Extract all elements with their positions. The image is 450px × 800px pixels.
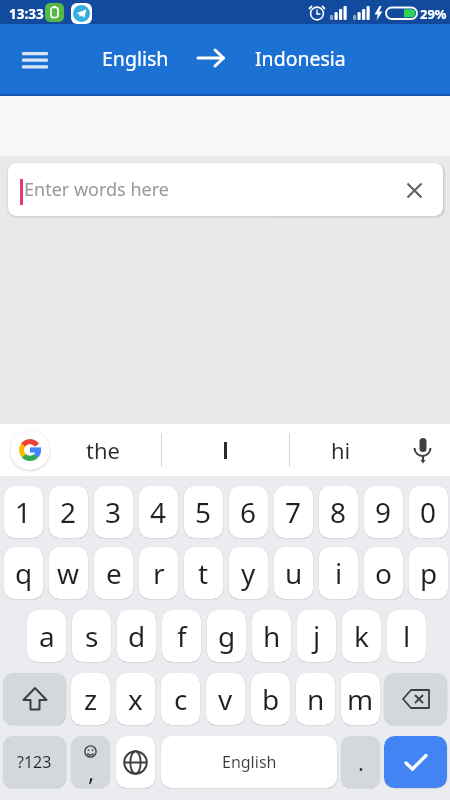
button[interactable]: 6 [229,486,268,538]
button[interactable] [14,42,56,78]
staticText: English [102,45,169,72]
button[interactable]: q [4,547,43,599]
button[interactable]: Indonesia [246,32,354,84]
button[interactable]: e [94,547,133,599]
staticText: 1 [15,493,32,531]
staticText: w [57,554,80,592]
button[interactable]: n [296,673,335,725]
staticText: m [347,680,374,718]
staticText: ?123 [17,751,52,773]
button[interactable]: English [88,32,183,84]
staticText: f [177,617,187,655]
staticText: l [403,617,411,655]
staticText: d [128,617,146,655]
staticText: t [198,554,209,592]
staticText: p [420,554,438,592]
button[interactable]: 8 [319,486,358,538]
button[interactable]: o [364,547,403,599]
button[interactable]: 0 [409,486,448,538]
button[interactable]: h [252,610,291,662]
button[interactable] [182,424,268,476]
staticText: 4 [150,493,167,531]
button[interactable]: w [49,547,88,599]
staticText: the [86,435,120,465]
staticText: j [313,617,321,655]
button[interactable]: v [206,673,245,725]
button[interactable]: 1 [4,486,43,538]
button[interactable]: t [184,547,223,599]
button[interactable]: j [297,610,336,662]
staticText: h [263,617,281,655]
button[interactable]: z [71,673,110,725]
staticText: 5 [195,493,212,531]
button[interactable] [384,673,447,725]
button[interactable]: the [60,424,146,476]
staticText: c [174,680,188,718]
button[interactable] [194,44,228,72]
staticText: 2 [60,493,77,531]
button[interactable]: m [341,673,380,725]
button[interactable]: y [229,547,268,599]
button[interactable]: 9 [364,486,403,538]
staticText: i [335,554,343,592]
button[interactable]: , [71,736,110,788]
staticText: hi [331,435,351,465]
button[interactable]: b [251,673,290,725]
button[interactable]: 3 [94,486,133,538]
staticText: v [218,680,233,718]
button[interactable] [384,736,447,788]
button[interactable] [116,736,155,788]
staticText: r [153,554,165,592]
staticText: y [241,554,256,592]
button[interactable] [403,179,425,201]
staticText: a [39,617,55,655]
staticText: English [222,751,277,773]
staticText: q [15,554,33,592]
staticText: b [262,680,280,718]
button[interactable]: c [161,673,200,725]
button[interactable]: l [387,610,426,662]
staticText: z [84,680,98,718]
staticText: s [85,617,99,655]
staticText: 6 [240,493,257,531]
button[interactable]: . [341,736,380,788]
button[interactable]: i [319,547,358,599]
staticText: g [218,617,236,655]
staticText: 9 [375,493,392,531]
button[interactable]: f [162,610,201,662]
button[interactable] [3,673,66,725]
button[interactable]: x [116,673,155,725]
staticText: k [354,617,369,655]
staticText: Indonesia [255,45,346,72]
button[interactable]: r [139,547,178,599]
button[interactable]: 5 [184,486,223,538]
button[interactable]: ?123 [3,736,66,788]
staticText: x [128,680,143,718]
button[interactable]: hi [298,424,384,476]
button[interactable]: Enter words here [8,163,443,216]
button[interactable] [10,430,50,470]
staticText: 3 [105,493,122,531]
staticText: u [285,554,303,592]
staticText: 7 [285,493,302,531]
staticText: . [358,747,364,777]
staticText: 8 [330,493,347,531]
staticText: Enter words here [24,177,169,202]
button[interactable]: p [409,547,448,599]
button[interactable]: g [207,610,246,662]
button[interactable]: u [274,547,313,599]
staticText: 29% [420,5,447,23]
button[interactable]: a [27,610,66,662]
button[interactable] [404,432,442,470]
staticText: 13:33 [9,5,44,23]
button[interactable]: d [117,610,156,662]
staticText: o [375,554,392,592]
staticText: , [88,755,95,788]
button[interactable]: 2 [49,486,88,538]
staticText: 0 [420,493,437,531]
button[interactable]: 4 [139,486,178,538]
button[interactable]: k [342,610,381,662]
button[interactable]: English [161,736,337,788]
button[interactable]: 7 [274,486,313,538]
button[interactable]: s [72,610,111,662]
